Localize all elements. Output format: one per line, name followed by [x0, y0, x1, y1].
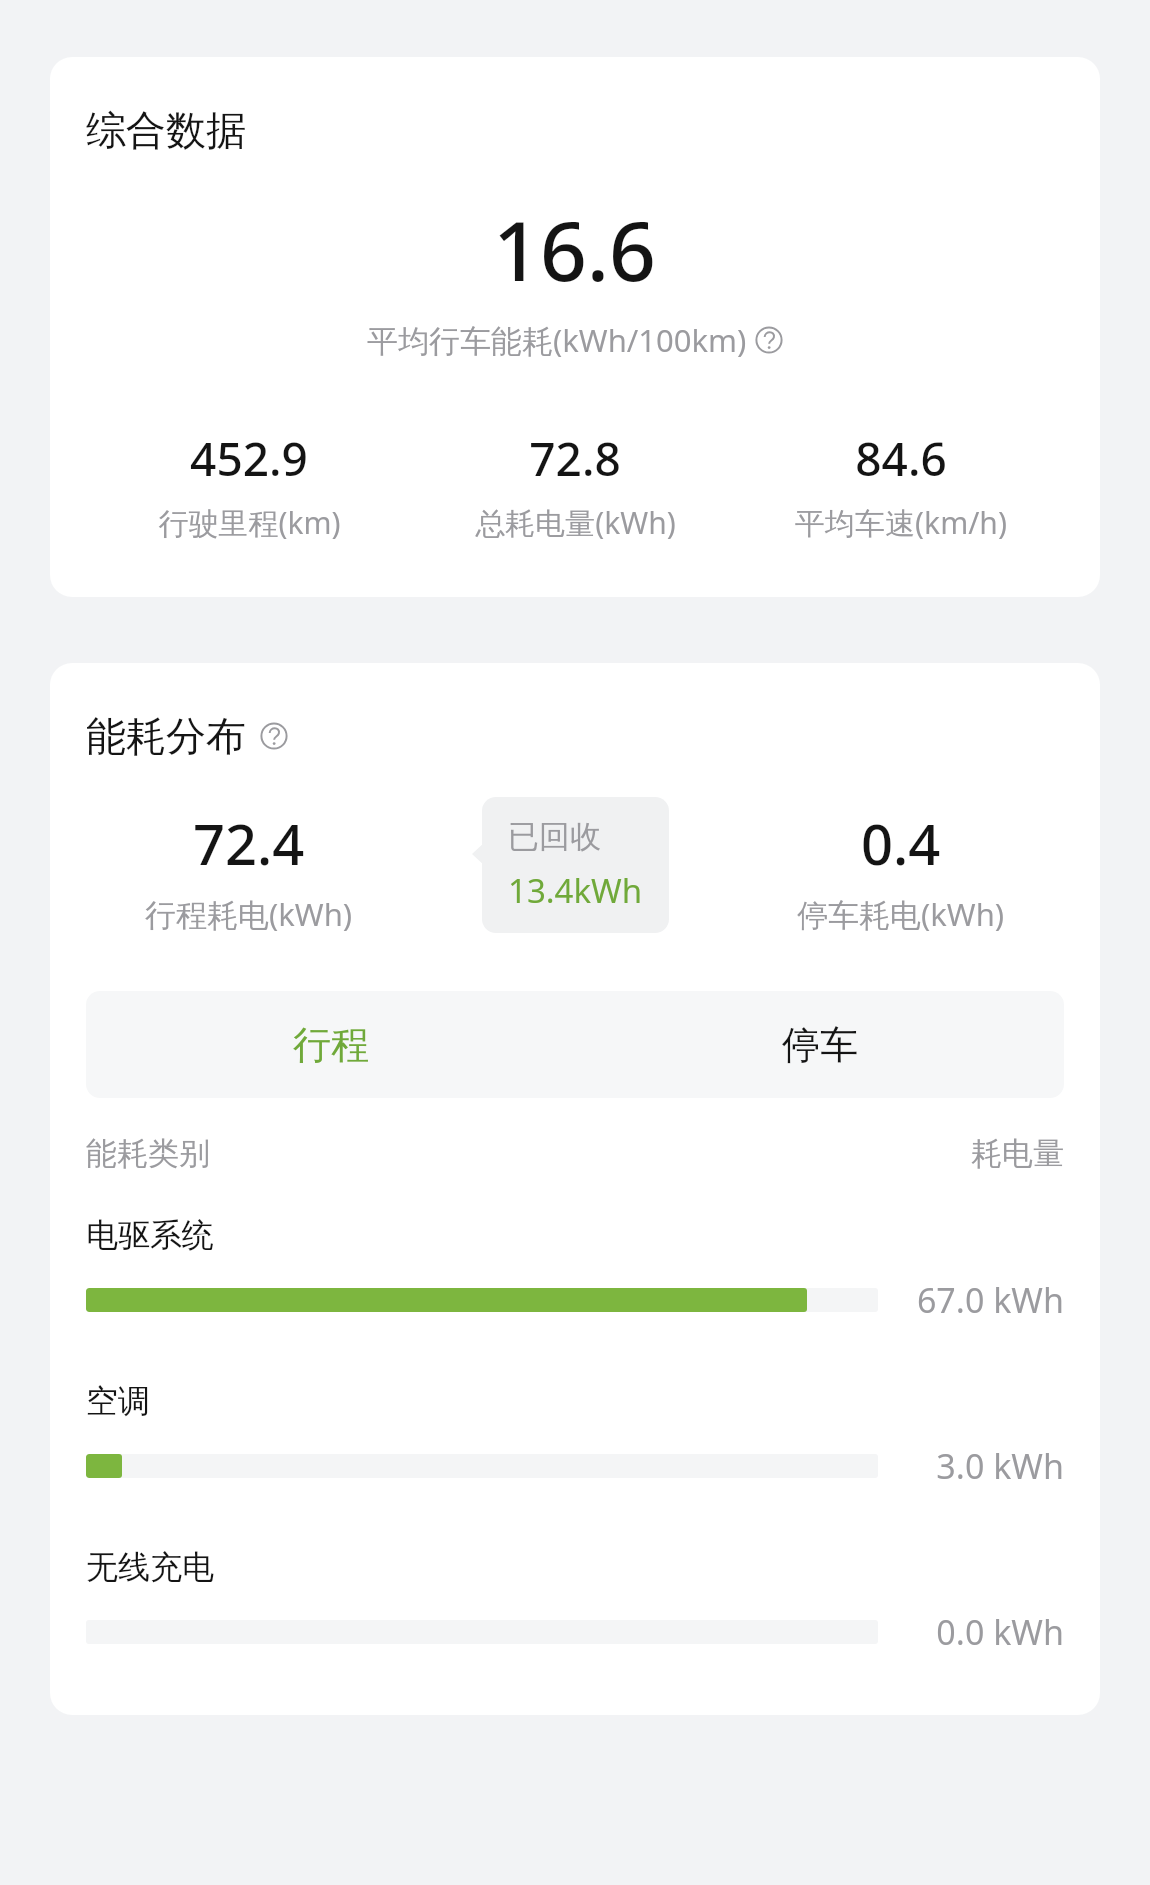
staticText: 行程耗电(kWh): [145, 893, 353, 935]
staticText: 综合数据: [86, 105, 246, 155]
staticText: 行驶里程(km): [158, 502, 341, 543]
button[interactable]: 停车: [575, 991, 1064, 1098]
staticText: 能耗分布: [86, 711, 246, 761]
staticText: 行程: [293, 1021, 369, 1069]
staticText: 16.6: [493, 193, 657, 305]
staticText: 能耗类别: [86, 1134, 210, 1173]
staticText: 72.4: [193, 805, 305, 881]
staticText: 停车: [782, 1021, 858, 1069]
staticText: 平均行车能耗(kWh/100km): [367, 319, 747, 361]
staticText: 耗电量: [971, 1134, 1064, 1173]
staticText: 平均车速(km/h): [795, 502, 1007, 543]
staticText: 空调: [86, 1381, 150, 1421]
staticText: 总耗电量(kWh): [475, 502, 676, 543]
button[interactable]: 行程: [86, 991, 575, 1098]
staticText: 0.0 kWh: [936, 1609, 1064, 1655]
staticText: 无线充电: [86, 1547, 214, 1587]
staticText: 72.8: [529, 427, 621, 490]
staticText: 已回收: [508, 817, 601, 856]
staticText: 电驱系统: [86, 1215, 214, 1255]
staticText: 停车耗电(kWh): [797, 893, 1005, 935]
other: 能耗分布说明: [260, 722, 288, 750]
staticText: 0.4: [861, 805, 941, 881]
staticText: 452.9: [190, 427, 308, 490]
staticText: 13.4kWh: [508, 868, 643, 913]
staticText: 84.6: [855, 427, 947, 490]
staticText: 67.0 kWh: [916, 1277, 1064, 1323]
button[interactable]: 平均行车能耗(kWh/100km): [86, 319, 1064, 361]
staticText: 3.0 kWh: [936, 1443, 1064, 1489]
other: 平均行车能耗说明: [755, 326, 783, 354]
button[interactable]: 能耗分布: [86, 711, 288, 761]
